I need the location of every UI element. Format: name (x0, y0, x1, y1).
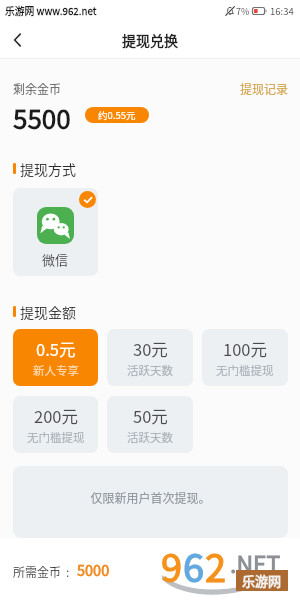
staticText: 50元 (133, 404, 168, 428)
button[interactable]: 200元 (13, 396, 98, 453)
button[interactable]: 100元 (202, 329, 288, 386)
staticText: 提现兑换 (122, 30, 178, 50)
staticText: 提现方式 (20, 159, 76, 178)
button[interactable]: 约0.55元 (85, 107, 149, 123)
staticText: 0.5元 (36, 337, 76, 361)
staticText: 5000 (77, 559, 110, 580)
staticText: 30元 (133, 337, 168, 361)
staticText: 16:34 (270, 4, 294, 18)
staticText: 2 (205, 538, 227, 590)
staticText: : (66, 563, 70, 580)
staticText: 活跃天数 (127, 429, 173, 446)
staticText: 乐游网 www.962.net (5, 4, 97, 18)
staticText: 乐游网 (242, 571, 282, 590)
button[interactable]: Back (0, 22, 36, 58)
button[interactable]: 0.5元 (13, 329, 98, 386)
staticText: 100元 (223, 337, 267, 361)
staticText: 活跃天数 (127, 362, 173, 379)
button[interactable]: 30元 (107, 329, 193, 386)
staticText: 9 (161, 538, 183, 590)
staticText: 提现记录 (240, 80, 289, 97)
staticText: 6 (183, 538, 205, 590)
staticText: .NET (230, 546, 281, 579)
staticText: 剩余金币 (13, 80, 62, 97)
button[interactable]: 50元 (107, 396, 193, 453)
staticText: 无门槛提现 (27, 429, 85, 446)
staticText: 提现金额 (20, 302, 76, 321)
staticText: 200元 (34, 404, 78, 428)
button[interactable]: 提现记录 (232, 72, 297, 105)
staticText: 5500 (13, 99, 71, 137)
staticText: 约0.55元 (98, 108, 136, 122)
staticText: 仅限新用户首次提现。 (90, 489, 211, 506)
staticText: 微信 (42, 250, 69, 269)
staticText: 所需金币 (13, 563, 62, 580)
staticText: 无门槛提现 (216, 362, 274, 379)
staticText: 新人专享 (33, 362, 79, 379)
button[interactable]: 微信 (13, 188, 98, 276)
staticText: 7% (236, 5, 250, 18)
